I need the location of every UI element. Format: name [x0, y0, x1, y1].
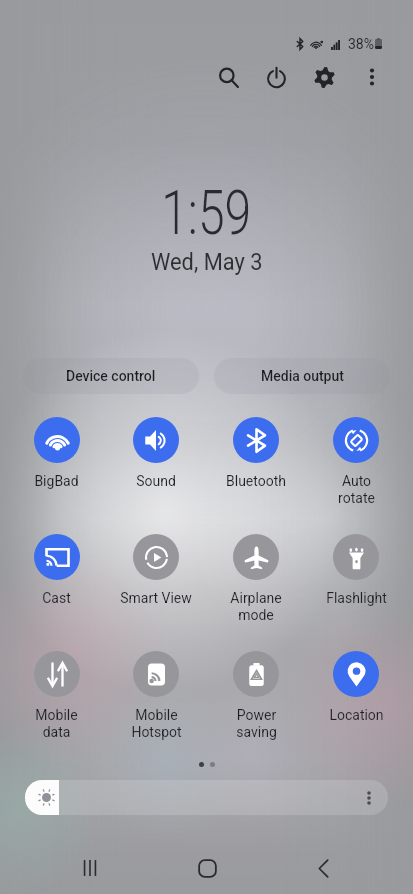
- button[interactable]: Device control: [23, 358, 199, 394]
- button[interactable]: Location: [306, 651, 406, 768]
- staticText: Media output: [261, 368, 344, 384]
- button[interactable]: Back: [297, 842, 349, 894]
- button[interactable]: [25, 780, 388, 815]
- staticText: Power saving: [236, 707, 277, 741]
- staticText: Auto rotate: [338, 473, 375, 507]
- button[interactable]: Power: [253, 54, 299, 100]
- staticText: Mobile data: [35, 707, 78, 741]
- button[interactable]: Airplane mode: [206, 534, 306, 651]
- staticText: Airplane mode: [230, 590, 282, 624]
- button[interactable]: Media output: [214, 358, 390, 394]
- button[interactable]: Flashlight: [306, 534, 406, 651]
- staticText: Cast: [42, 590, 71, 606]
- button[interactable]: Mobile data: [7, 651, 106, 768]
- button[interactable]: Home: [181, 842, 233, 894]
- button[interactable]: Brightness options: [359, 788, 379, 808]
- button[interactable]: Auto rotate: [306, 417, 406, 534]
- button[interactable]: Smart View: [106, 534, 206, 651]
- staticText: Bluetooth: [226, 473, 286, 489]
- button[interactable]: Sound: [106, 417, 206, 534]
- staticText: Sound: [136, 473, 176, 489]
- staticText: Smart View: [120, 590, 192, 606]
- button[interactable]: Mobile Hotspot: [106, 651, 206, 768]
- staticText: 1:59: [161, 176, 252, 249]
- button[interactable]: BigBad: [7, 417, 106, 534]
- staticText: Wed, May 3: [151, 249, 263, 276]
- button[interactable]: Cast: [7, 534, 106, 651]
- button[interactable]: Power saving: [206, 651, 306, 768]
- button[interactable]: Search: [205, 54, 251, 100]
- button[interactable]: Bluetooth: [206, 417, 306, 534]
- staticText: 38%: [348, 36, 374, 52]
- button[interactable]: More options: [349, 54, 395, 100]
- staticText: BigBad: [34, 473, 79, 489]
- button[interactable]: Recents: [64, 842, 116, 894]
- staticText: Mobile Hotspot: [131, 707, 182, 741]
- staticText: Device control: [66, 368, 156, 384]
- button[interactable]: Settings: [301, 54, 347, 100]
- staticText: Flashlight: [326, 590, 387, 606]
- staticText: Location: [329, 707, 384, 723]
